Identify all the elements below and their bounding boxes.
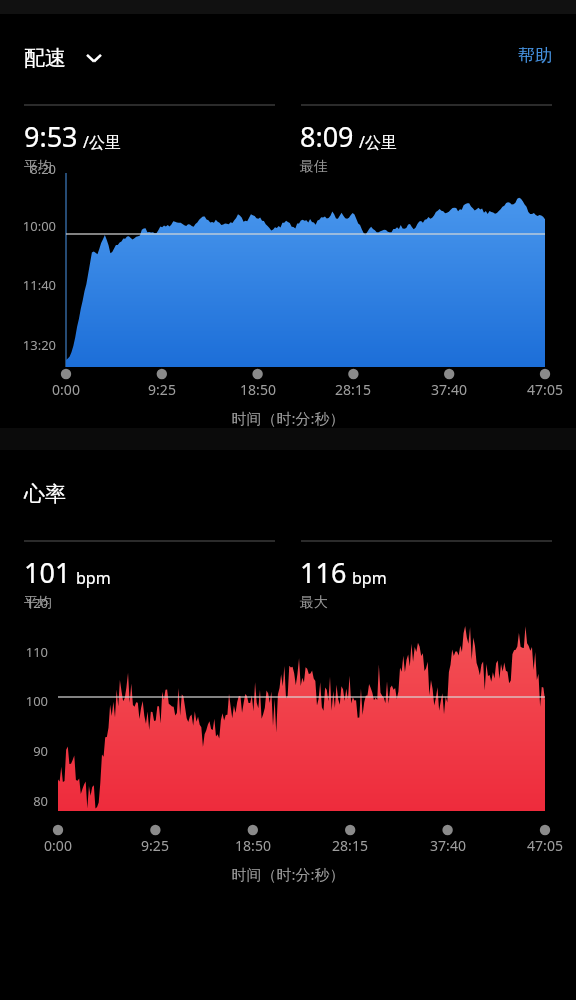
staticText: 配速: [24, 45, 66, 71]
staticText: 28:15: [319, 380, 387, 399]
staticText: 28:15: [316, 836, 384, 855]
staticText: 47:05: [511, 380, 576, 399]
staticText: 90: [0, 742, 48, 760]
staticText: 18:50: [224, 380, 292, 399]
staticText: 平均: [24, 594, 52, 612]
staticText: 8:09: [300, 118, 354, 155]
button[interactable]: 帮助: [518, 45, 576, 66]
staticText: 80: [0, 792, 48, 810]
staticText: 37:40: [414, 836, 482, 855]
staticText: 13:20: [0, 336, 56, 354]
staticText: 帮助: [518, 45, 552, 66]
staticText: 18:50: [219, 836, 287, 855]
staticText: 120: [0, 594, 48, 612]
staticText: bpm: [352, 567, 387, 589]
button[interactable]: 配速: [24, 45, 106, 71]
staticText: 9:25: [121, 836, 189, 855]
staticText: 最大: [300, 594, 328, 612]
staticText: bpm: [76, 567, 111, 589]
staticText: 0:00: [24, 836, 92, 855]
staticText: 116: [300, 554, 347, 591]
staticText: 0:00: [32, 380, 100, 399]
staticText: 心率: [24, 481, 66, 507]
staticText: 8:20: [0, 160, 56, 178]
staticText: 10:00: [0, 217, 56, 235]
staticText: 47:05: [511, 836, 576, 855]
staticText: 100: [0, 692, 48, 710]
staticText: 37:40: [415, 380, 483, 399]
other: Change metric: [82, 46, 106, 70]
staticText: 11:40: [0, 276, 56, 294]
staticText: 平均: [24, 158, 52, 176]
staticText: 9:25: [128, 380, 196, 399]
staticText: 110: [0, 643, 48, 661]
staticText: 时间（时:分:秒）: [0, 408, 576, 428]
staticText: /公里: [359, 131, 397, 153]
staticText: 101: [24, 554, 71, 591]
staticText: 9:53: [24, 118, 78, 155]
staticText: /公里: [83, 131, 121, 153]
staticText: 最佳: [300, 158, 328, 176]
staticText: 时间（时:分:秒）: [0, 864, 576, 884]
